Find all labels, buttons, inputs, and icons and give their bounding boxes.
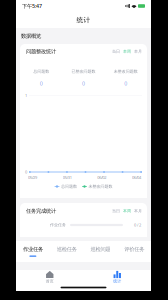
staticText: 下午5:47 — [22, 2, 42, 10]
button[interactable]: 首页 — [16, 270, 83, 284]
staticText: 0 — [124, 80, 127, 87]
button[interactable]: 当日 — [112, 208, 120, 213]
button[interactable]: 评价任务 — [117, 241, 151, 262]
staticText: 本月 — [134, 49, 142, 54]
staticText: 已整改问题数 — [71, 69, 95, 74]
button[interactable]: 本周 — [123, 208, 131, 213]
staticText: 数据概览 — [21, 33, 41, 39]
staticText: 任务完成统计 — [26, 208, 56, 214]
staticText: 评价任务 — [124, 246, 144, 253]
button[interactable]: 本月 — [134, 208, 142, 213]
staticText: 未整改问题数 — [88, 184, 112, 189]
staticText: 05/31 — [63, 175, 72, 180]
staticText: 05/29 — [28, 175, 37, 180]
staticText: 本月 — [134, 208, 142, 213]
staticText: 0 — [82, 80, 85, 87]
staticText: 1 — [25, 93, 27, 98]
staticText: 06/02 — [97, 175, 106, 180]
staticText: 当日 — [112, 208, 120, 213]
staticText: 问题整改统计 — [26, 48, 56, 55]
staticText: 巡检任务 — [57, 246, 77, 253]
staticText: 作业任务 — [23, 246, 43, 253]
button[interactable]: 统计 — [83, 270, 151, 284]
button[interactable]: 本周 — [123, 49, 131, 54]
staticText: 巡检问题 — [90, 246, 110, 253]
button[interactable]: 作业任务 — [16, 241, 50, 262]
staticText: 统计 — [76, 16, 90, 24]
staticText: 作业任务 — [50, 222, 66, 227]
staticText: 0 / 2 — [134, 222, 141, 228]
staticText: 0 — [25, 169, 27, 175]
button[interactable]: 巡检问题 — [83, 241, 117, 262]
staticText: 总问题数 — [33, 69, 49, 74]
staticText: 本周 — [123, 208, 131, 213]
button[interactable]: 巡检任务 — [50, 241, 84, 262]
staticText: 总问题数 — [61, 184, 77, 189]
button[interactable]: 当日 — [112, 49, 120, 54]
staticText: 首页 — [46, 279, 54, 284]
staticText: 统计 — [113, 279, 121, 284]
staticText: 0 — [40, 80, 43, 87]
staticText: 06/04 — [132, 175, 141, 180]
button[interactable]: 本月 — [134, 49, 142, 54]
staticText: 未整改问题数 — [114, 69, 138, 74]
staticText: 本周 — [123, 49, 131, 54]
staticText: 当日 — [112, 49, 120, 54]
